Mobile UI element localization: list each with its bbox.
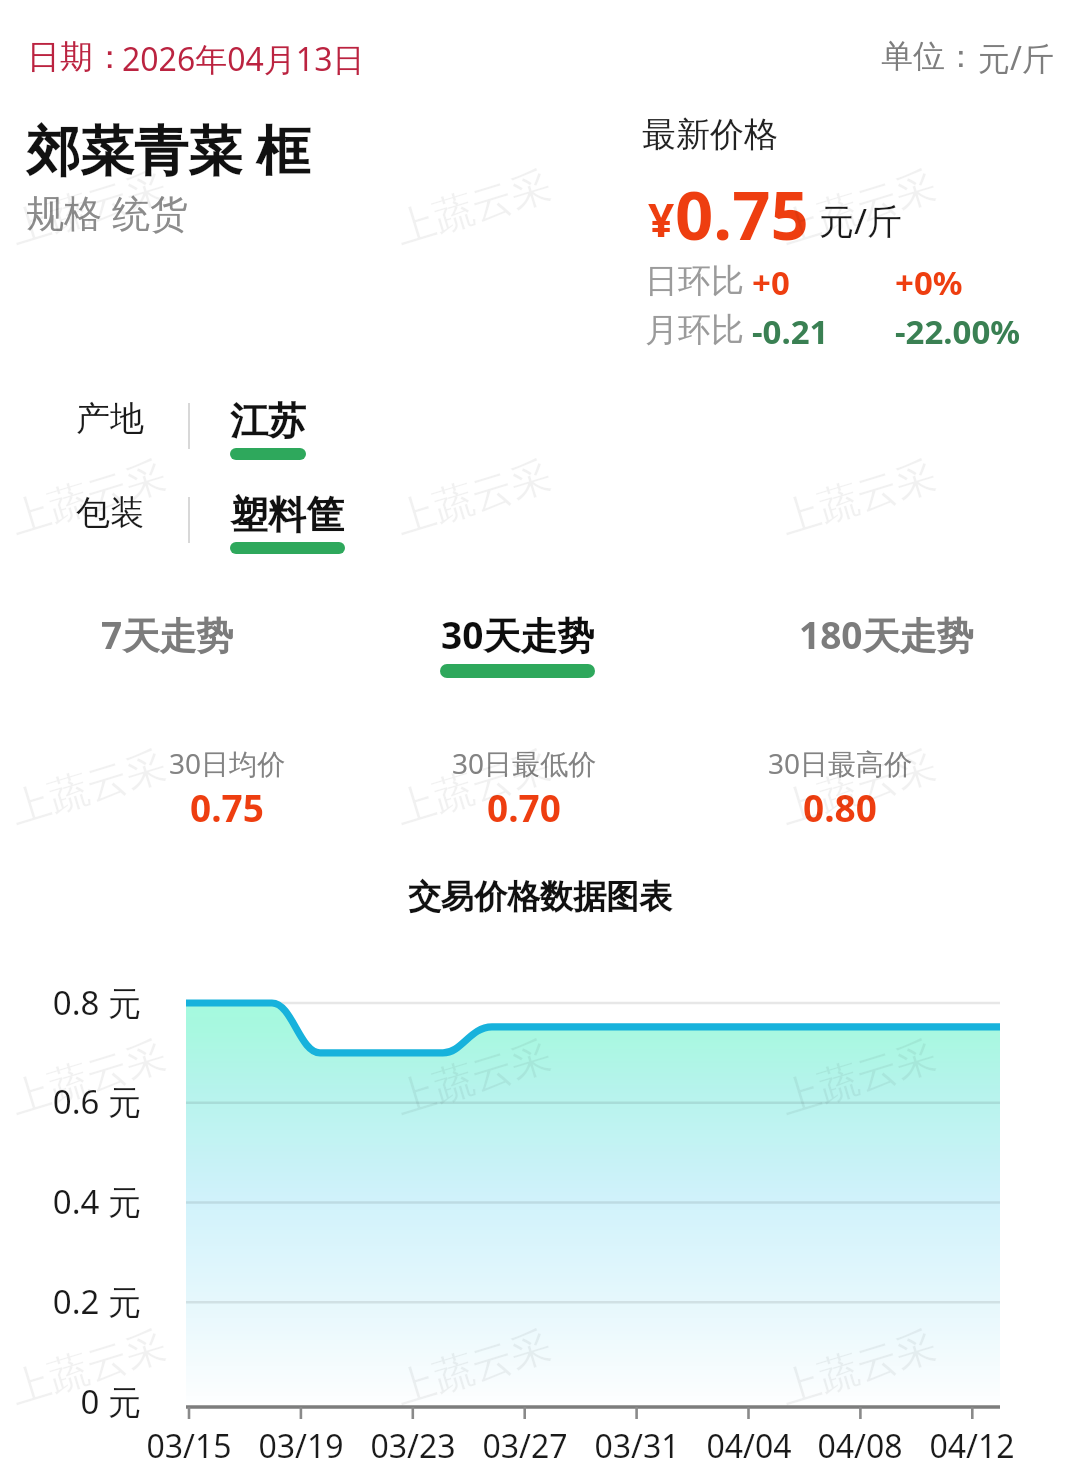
staticText: 最新价格 [642, 113, 778, 156]
staticText: 30日最低价 [452, 744, 597, 782]
staticText: 180天走势 [799, 609, 974, 660]
button[interactable]: 7天走势 [85, 595, 250, 691]
staticText: 上蔬云采 [389, 740, 557, 834]
staticText: 交易价格数据图表 [0, 876, 1080, 918]
staticText: 江苏 [230, 397, 306, 445]
button[interactable]: 30日最低价 [394, 744, 654, 830]
button[interactable]: 180天走势 [783, 595, 991, 691]
staticText: 上蔬云采 [4, 1320, 172, 1414]
staticText: 04/12 [892, 1424, 1052, 1461]
staticText: -22.00% [895, 309, 1021, 354]
staticText: 上蔬云采 [4, 160, 172, 254]
staticText: 30天走势 [441, 609, 595, 660]
staticText: 04/08 [780, 1424, 940, 1461]
staticText: 0.80 [803, 782, 877, 830]
staticText: +0 [752, 260, 790, 305]
staticText: 上蔬云采 [774, 160, 942, 254]
staticText: 上蔬云采 [774, 1030, 942, 1124]
staticText: 03/23 [333, 1424, 493, 1461]
button[interactable]: 产地 [76, 397, 306, 471]
staticText: 03/31 [557, 1424, 717, 1461]
staticText: 0.6 元 [0, 1079, 141, 1124]
staticText: 04/04 [669, 1424, 829, 1461]
other: 30天价格走势折线图 [0, 0, 1080, 1461]
staticText: 包装 [76, 491, 188, 534]
button[interactable]: 30日均价 [97, 744, 357, 830]
staticText: 塑料筐 [230, 491, 344, 539]
staticText: 上蔬云采 [774, 450, 942, 544]
staticText: 7天走势 [101, 609, 234, 660]
staticText: 上蔬云采 [389, 450, 557, 544]
staticText: 上蔬云采 [389, 1320, 557, 1414]
staticText: 0.8 元 [0, 980, 141, 1025]
staticText: 元/斤 [978, 36, 1054, 80]
button[interactable]: 30天走势 [424, 595, 611, 691]
staticText: -0.21 [752, 309, 829, 354]
staticText: 上蔬云采 [774, 740, 942, 834]
staticText: 0.75 [675, 168, 809, 259]
staticText: 上蔬云采 [4, 740, 172, 834]
staticText: +0% [895, 260, 963, 305]
staticText: 30日均价 [169, 744, 286, 782]
staticText: 月环比 [645, 309, 744, 351]
staticText: 郊菜青菜 框 [26, 112, 311, 186]
staticText: 元/斤 [819, 197, 903, 245]
staticText: 规格 统货 [26, 186, 188, 238]
staticText: 03/27 [445, 1424, 605, 1461]
staticText: 上蔬云采 [774, 1320, 942, 1414]
staticText: 上蔬云采 [389, 1030, 557, 1124]
staticText: 0.2 元 [0, 1279, 141, 1324]
button[interactable]: 包装 [76, 491, 345, 565]
staticText: 0.4 元 [0, 1179, 141, 1224]
staticText: 产地 [76, 397, 188, 440]
staticText: 0.70 [487, 782, 561, 830]
staticText: 上蔬云采 [389, 160, 557, 254]
staticText: ¥ [648, 188, 675, 251]
staticText: 2026年04月13日 [122, 37, 365, 81]
staticText: 上蔬云采 [4, 1030, 172, 1124]
staticText: 0.75 [190, 782, 264, 830]
button[interactable]: 30日最高价 [710, 744, 970, 830]
staticText: 单位： [881, 36, 977, 76]
staticText: 0 元 [0, 1379, 141, 1424]
staticText: 30日最高价 [768, 744, 913, 782]
staticText: 03/15 [109, 1424, 269, 1461]
staticText: 03/19 [221, 1424, 381, 1461]
staticText: 日期： [27, 36, 126, 78]
staticText: 日环比 [645, 260, 744, 302]
staticText: 上蔬云采 [4, 450, 172, 544]
